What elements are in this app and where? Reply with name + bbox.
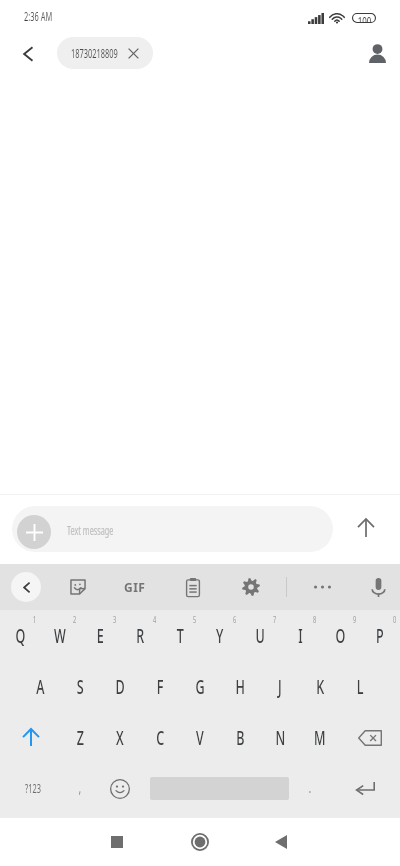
staticText: X: [116, 725, 124, 751]
button[interactable]: Voice input: [359, 568, 397, 606]
button[interactable]: Stickers: [59, 568, 97, 606]
button[interactable]: N: [260, 712, 300, 763]
button[interactable]: Collapse: [7, 568, 45, 606]
staticText: H: [236, 674, 245, 700]
staticText: O: [335, 623, 345, 649]
staticText: Y: [216, 623, 224, 649]
button[interactable]: Text message: [12, 506, 333, 552]
button[interactable]: X: [100, 712, 140, 763]
staticText: U: [256, 623, 265, 649]
staticText: 8: [313, 613, 317, 625]
button[interactable]: ?123: [0, 763, 60, 814]
staticText: E: [97, 623, 104, 649]
staticText: .: [309, 778, 311, 797]
button[interactable]: Back: [259, 820, 303, 864]
button[interactable]: Contact details: [357, 33, 397, 73]
staticText: 100: [358, 13, 371, 23]
button[interactable]: G: [180, 661, 220, 712]
button[interactable]: Z: [60, 712, 100, 763]
button[interactable]: Settings: [232, 568, 270, 606]
button[interactable]: Send: [348, 510, 384, 546]
button[interactable]: 6: [200, 610, 240, 661]
staticText: F: [157, 674, 164, 700]
button[interactable]: 8: [280, 610, 320, 661]
button[interactable]: A: [20, 661, 60, 712]
button[interactable]: H: [220, 661, 260, 712]
button[interactable]: 4: [120, 610, 160, 661]
button[interactable]: B: [220, 712, 260, 763]
button[interactable]: 0: [360, 610, 400, 661]
button[interactable]: K: [300, 661, 340, 712]
button[interactable]: Backspace: [340, 712, 400, 763]
staticText: 4: [153, 613, 157, 625]
button[interactable]: 3: [80, 610, 120, 661]
button[interactable]: F: [140, 661, 180, 712]
button[interactable]: Clipboard: [174, 568, 212, 606]
button[interactable]: Back: [10, 36, 46, 72]
staticText: Text message: [67, 521, 113, 539]
staticText: S: [77, 674, 84, 700]
staticText: D: [115, 674, 125, 700]
button[interactable]: Enter: [330, 763, 400, 814]
button[interactable]: Recent apps: [95, 820, 139, 864]
button[interactable]: D: [100, 661, 140, 712]
staticText: K: [316, 674, 325, 700]
button[interactable]: GIF keyboard: [116, 568, 154, 606]
button[interactable]: 2: [40, 610, 80, 661]
staticText: Z: [77, 725, 84, 751]
staticText: 7: [273, 613, 277, 625]
staticText: V: [196, 725, 204, 751]
button[interactable]: V: [180, 712, 220, 763]
staticText: P: [376, 623, 384, 649]
staticText: 5: [193, 613, 197, 625]
button[interactable]: L: [340, 661, 380, 712]
button[interactable]: M: [300, 712, 340, 763]
staticText: C: [156, 725, 165, 751]
staticText: T: [177, 623, 184, 649]
button[interactable]: Emoji: [100, 763, 140, 814]
button[interactable]: S: [60, 661, 100, 712]
staticText: B: [236, 725, 245, 751]
button[interactable]: More options: [303, 568, 341, 606]
button[interactable]: Add attachment: [17, 515, 51, 549]
staticText: R: [136, 623, 145, 649]
staticText: 9: [353, 613, 357, 625]
staticText: 1: [33, 613, 37, 625]
staticText: M: [314, 725, 326, 751]
staticText: Q: [15, 623, 25, 649]
button[interactable]: Space: [140, 763, 290, 814]
button[interactable]: Shift: [0, 712, 60, 763]
staticText: GIF: [124, 579, 146, 595]
button[interactable]: 18730218809: [57, 37, 153, 69]
staticText: 18730218809: [71, 45, 118, 61]
staticText: N: [275, 725, 285, 751]
staticText: L: [357, 674, 364, 700]
button[interactable]: 5: [160, 610, 200, 661]
staticText: 0: [393, 613, 397, 625]
staticText: G: [195, 674, 205, 700]
button[interactable]: 1: [0, 610, 40, 661]
staticText: ,: [79, 778, 81, 797]
staticText: 6: [233, 613, 237, 625]
button[interactable]: C: [140, 712, 180, 763]
button[interactable]: 7: [240, 610, 280, 661]
staticText: I: [298, 623, 303, 649]
button[interactable]: J: [260, 661, 300, 712]
staticText: J: [278, 674, 282, 700]
staticText: ?123: [25, 780, 41, 796]
button[interactable]: Home: [178, 820, 222, 864]
staticText: 3: [113, 613, 117, 625]
staticText: 2: [73, 613, 77, 625]
button[interactable]: 9: [320, 610, 360, 661]
staticText: A: [36, 674, 45, 700]
staticText: W: [54, 623, 66, 649]
staticText: 2:36 AM: [24, 8, 52, 24]
